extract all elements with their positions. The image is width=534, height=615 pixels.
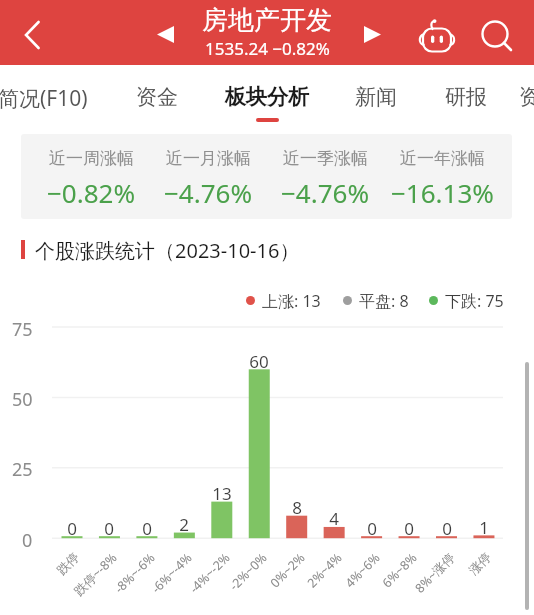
- staticText: 下跌: 75: [445, 290, 504, 310]
- button[interactable]: 上涨: 13: [246, 290, 321, 310]
- staticText: −16.13%: [391, 175, 494, 210]
- staticText: 0%~2%: [266, 549, 308, 592]
- staticText: 0: [22, 528, 33, 552]
- button[interactable]: Search: [473, 12, 517, 56]
- button[interactable]: 下跌: 75: [429, 290, 504, 310]
- staticText: 近一年涨幅: [400, 148, 485, 169]
- staticText: 0: [442, 517, 452, 538]
- staticText: 近一月涨幅: [166, 148, 251, 169]
- staticText: -8%~-6%: [110, 549, 158, 597]
- staticText: 8: [292, 496, 302, 517]
- staticText: 资金: [136, 84, 178, 110]
- staticText: 0: [142, 517, 152, 538]
- button[interactable]: 板块分析: [217, 65, 317, 123]
- button[interactable]: 研报: [416, 65, 516, 123]
- staticText: 跌停: [54, 549, 83, 578]
- button[interactable]: 平盘: 8: [343, 290, 409, 310]
- staticText: 8%~涨停: [411, 549, 458, 597]
- staticText: 0: [104, 517, 114, 538]
- staticText: -6%~-4%: [147, 549, 195, 597]
- staticText: 50: [12, 387, 33, 411]
- staticText: -2%~0%: [225, 549, 270, 595]
- button[interactable]: Previous sector: [145, 14, 185, 54]
- staticText: 6%~8%: [378, 549, 420, 592]
- staticText: −0.82%: [47, 175, 136, 210]
- staticText: 平盘: 8: [359, 290, 409, 310]
- staticText: 0: [367, 517, 377, 538]
- staticText: 4: [329, 507, 339, 528]
- staticText: 研报: [445, 84, 487, 110]
- staticText: 1: [479, 516, 489, 537]
- button[interactable]: 个股涨跌统计（2023-10-16）: [21, 237, 300, 262]
- staticText: 个股涨跌统计（2023-10-16）: [35, 237, 300, 262]
- staticText: 涨停: [466, 549, 495, 578]
- staticText: 2: [179, 513, 189, 534]
- button[interactable]: 新闻: [326, 65, 426, 123]
- staticText: 0: [67, 517, 77, 538]
- button[interactable]: 资讯: [490, 65, 534, 123]
- staticText: 房地产开发: [202, 4, 332, 37]
- staticText: 新闻: [355, 84, 397, 110]
- button[interactable]: 资金: [107, 65, 207, 123]
- staticText: 近一周涨幅: [49, 148, 134, 169]
- staticText: 1535.24 −0.82%: [205, 37, 330, 60]
- button[interactable]: Back: [10, 12, 54, 56]
- staticText: -4%~-2%: [185, 549, 233, 597]
- staticText: 4%~6%: [341, 549, 383, 592]
- staticText: 资讯: [519, 84, 534, 110]
- staticText: 2%~4%: [303, 549, 345, 592]
- staticText: 0: [404, 517, 414, 538]
- staticText: 跌停~-8%: [70, 549, 120, 599]
- staticText: 简况(F10): [0, 84, 88, 113]
- staticText: −4.76%: [281, 175, 370, 210]
- button[interactable]: 简况(F10): [0, 65, 93, 123]
- staticText: 上涨: 13: [262, 290, 321, 310]
- staticText: 近一季涨幅: [283, 148, 368, 169]
- staticText: −4.76%: [164, 175, 253, 210]
- staticText: 板块分析: [225, 84, 309, 110]
- staticText: 60: [249, 350, 269, 371]
- staticText: 13: [212, 482, 232, 503]
- staticText: 25: [12, 457, 33, 481]
- button[interactable]: Next sector: [352, 14, 392, 54]
- button[interactable]: AI assistant: [415, 12, 459, 56]
- staticText: 75: [12, 317, 33, 341]
